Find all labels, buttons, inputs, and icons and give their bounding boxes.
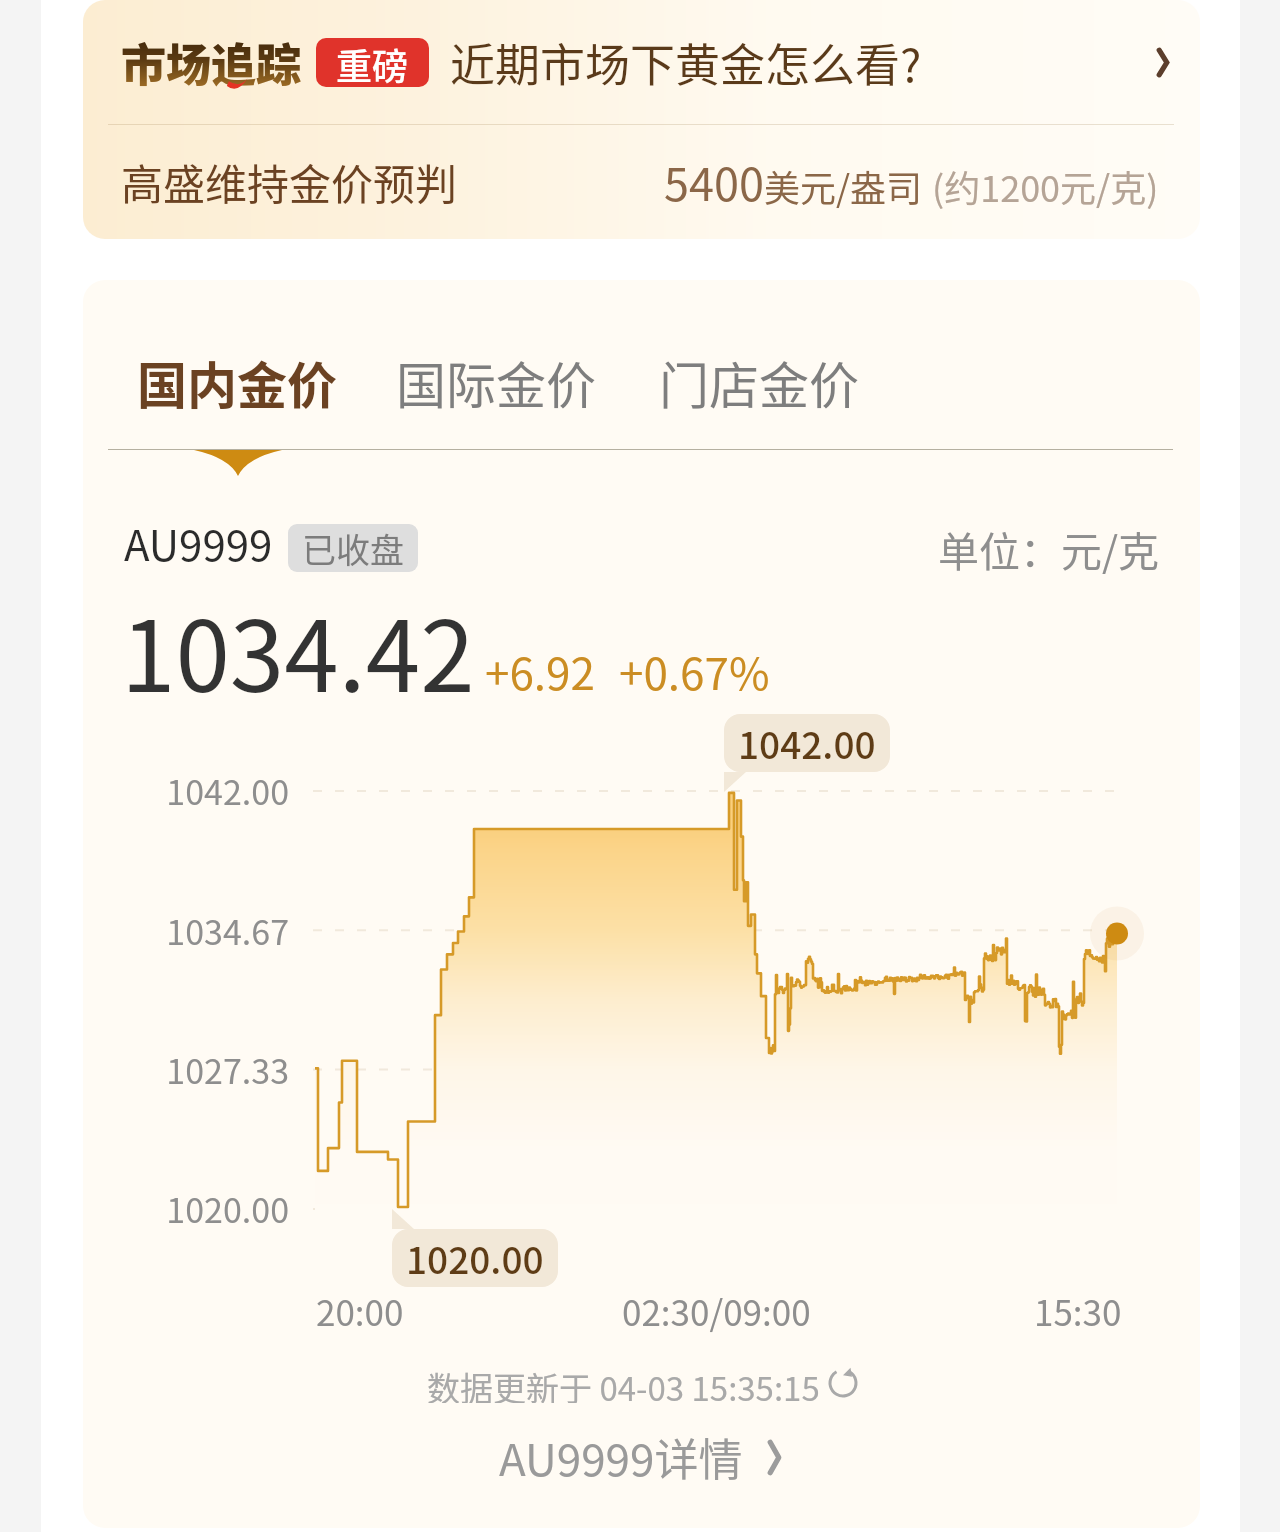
button[interactable]: AU9999详情 [83, 1422, 1200, 1492]
button[interactable]: 国际金价 [396, 346, 596, 418]
staticText: 高盛维持金价预判 [121, 151, 458, 212]
staticText: 单位：元/克 [83, 519, 1159, 578]
button[interactable]: 国内金价 [137, 346, 337, 418]
staticText: 5400 [664, 149, 764, 214]
button[interactable]: Refresh [83, 1363, 1200, 1403]
staticText: 15:30 [1034, 1285, 1122, 1336]
staticText: AU9999详情 [499, 1425, 743, 1489]
staticText: 市场追踪 [121, 30, 302, 95]
staticText: 国内金价 [137, 346, 337, 418]
staticText: 1027.33 [89, 1045, 289, 1094]
staticText: 1042.00 [738, 716, 876, 770]
staticText: 门店金价 [659, 346, 859, 418]
staticText: +6.92 [485, 639, 595, 703]
staticText: (约1200元/克) [932, 160, 1159, 212]
staticText: 1034.67 [89, 906, 289, 955]
staticText: 近期市场下黄金怎么看? [450, 30, 922, 95]
staticText: 20:00 [316, 1285, 404, 1336]
staticText: 1034.42 [121, 578, 475, 720]
staticText: 02:30/09:00 [622, 1285, 811, 1336]
staticText: 重磅 [336, 38, 409, 87]
staticText: AU9999 [124, 512, 273, 573]
button[interactable]: 门店金价 [659, 346, 859, 418]
button[interactable]: 市场追踪 [83, 0, 1200, 239]
staticText: 国际金价 [396, 346, 596, 418]
staticText: 1020.00 [89, 1184, 289, 1233]
staticText: +0.67% [619, 639, 770, 703]
staticText: 1042.00 [89, 766, 289, 815]
staticText: 已收盘 [302, 524, 404, 572]
staticText: 1020.00 [406, 1231, 544, 1285]
staticText: 美元/盎司 [764, 160, 923, 212]
staticText: 数据更新于 04-03 15:35:15 [427, 1363, 820, 1403]
